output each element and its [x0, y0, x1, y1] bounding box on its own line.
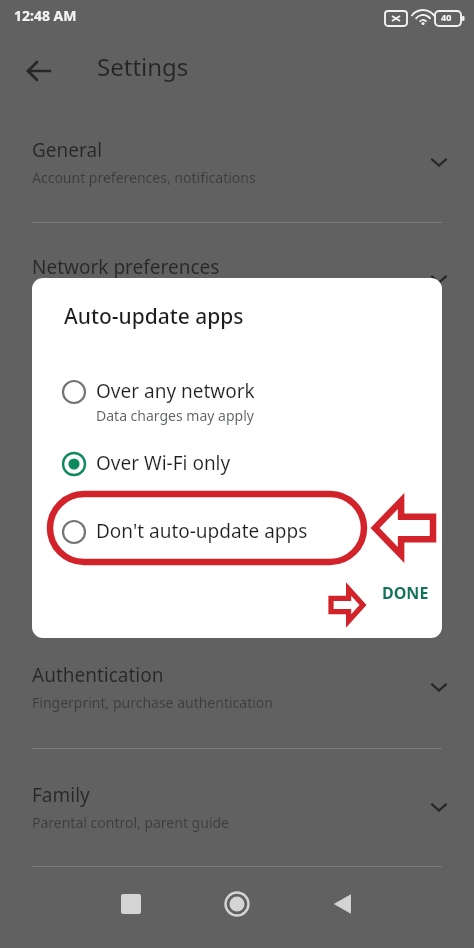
- staticText: Fingerprint, purchase authentication: [32, 693, 273, 712]
- staticText: 12:48 AM: [14, 6, 77, 25]
- button[interactable]: DONE: [372, 576, 439, 610]
- staticText: Data charges may apply: [96, 406, 254, 425]
- staticText: Settings: [97, 50, 189, 83]
- staticText: General: [32, 137, 103, 163]
- staticText: Family: [32, 782, 90, 808]
- staticText: DONE: [382, 582, 429, 604]
- staticText: Account preferences, notifications: [32, 168, 256, 187]
- button[interactable]: Over any network: [32, 374, 442, 429]
- staticText: Over any network: [96, 378, 255, 404]
- button[interactable]: Back: [313, 874, 373, 934]
- button[interactable]: Don't auto-update apps: [32, 514, 442, 548]
- button[interactable]: Authentication: [0, 658, 474, 722]
- button[interactable]: Family: [0, 778, 474, 842]
- button[interactable]: General: [0, 133, 474, 197]
- button[interactable]: Back: [20, 48, 66, 94]
- staticText: Auto-update apps: [64, 302, 244, 331]
- staticText: Authentication: [32, 662, 164, 688]
- button[interactable]: Home: [207, 874, 267, 934]
- staticText: 40: [441, 11, 452, 23]
- button[interactable]: Recents: [101, 874, 161, 934]
- staticText: Network preferences: [32, 254, 220, 280]
- staticText: Parental control, parent guide: [32, 813, 229, 832]
- button[interactable]: Network preferences: [0, 250, 474, 314]
- staticText: Over Wi-Fi only: [96, 450, 231, 476]
- button[interactable]: Over Wi-Fi only: [32, 446, 442, 480]
- staticText: Don't auto-update apps: [96, 518, 308, 544]
